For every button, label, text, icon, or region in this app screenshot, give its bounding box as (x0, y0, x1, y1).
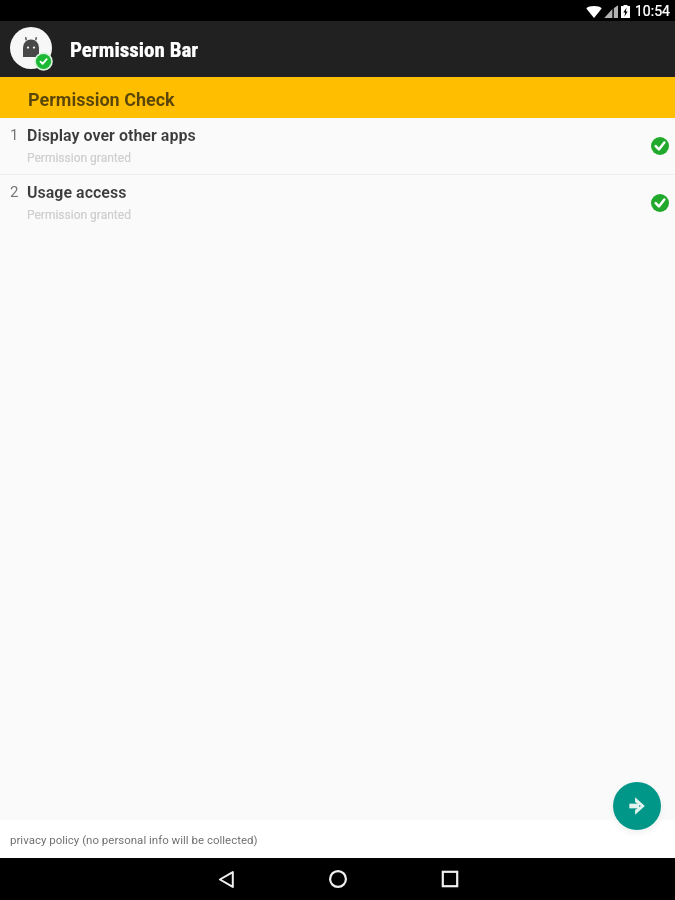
staticText: 1 (10, 126, 19, 144)
staticText: Permission granted (27, 151, 131, 165)
staticText: privacy policy (no personal info will be… (10, 833, 258, 846)
staticText: Display over other apps (27, 126, 196, 145)
button[interactable]: Back (204, 858, 248, 900)
button[interactable]: 2 (0, 175, 675, 231)
staticText: Permission Bar (70, 38, 199, 63)
button[interactable]: Next (613, 782, 661, 830)
staticText: Permission granted (27, 208, 131, 222)
staticText: 10:54 (635, 3, 670, 19)
button[interactable]: App icon (10, 27, 54, 71)
button[interactable]: 1 (0, 118, 675, 174)
button[interactable]: Recents (428, 858, 472, 900)
button[interactable]: privacy policy (no personal info will be… (0, 820, 675, 858)
staticText: Permission Check (28, 89, 175, 110)
staticText: Usage access (27, 183, 127, 202)
button[interactable]: Home (316, 858, 360, 900)
staticText: 2 (10, 183, 19, 201)
